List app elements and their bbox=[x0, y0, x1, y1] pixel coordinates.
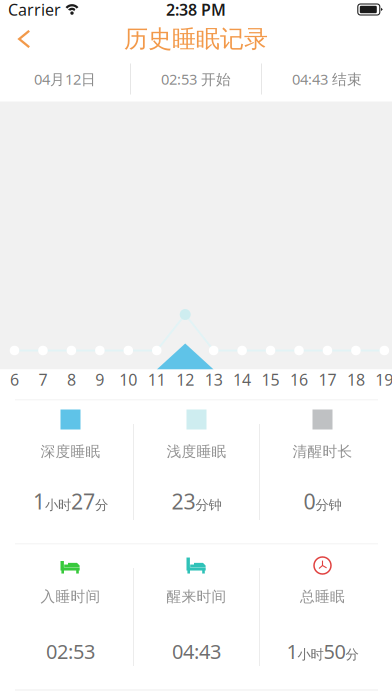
staticText: 分钟 bbox=[195, 497, 221, 513]
staticText: 0 bbox=[303, 487, 315, 515]
staticText: 总睡眠 bbox=[300, 587, 345, 605]
staticText: 19 bbox=[375, 369, 392, 390]
staticText: 50 bbox=[323, 638, 345, 664]
staticText: 27 bbox=[71, 487, 95, 515]
staticText: 11 bbox=[148, 369, 166, 390]
staticText: 1 bbox=[33, 487, 45, 515]
staticText: 醒来时间 bbox=[166, 587, 226, 605]
staticText: 14 bbox=[233, 369, 251, 390]
staticText: 小时 bbox=[297, 646, 323, 663]
staticText: 清醒时长 bbox=[292, 442, 352, 460]
staticText: Carrier bbox=[8, 0, 61, 20]
staticText: 2:38 PM bbox=[166, 0, 226, 20]
staticText: 10 bbox=[119, 369, 137, 390]
staticText: 02:53 开始 bbox=[161, 69, 231, 89]
staticText: 02:53 bbox=[46, 638, 95, 664]
staticText: 分 bbox=[345, 646, 358, 663]
staticText: 12 bbox=[176, 369, 194, 390]
staticText: 6 bbox=[10, 369, 19, 390]
staticText: 04月12日 bbox=[34, 69, 96, 89]
staticText: 23 bbox=[171, 487, 195, 515]
staticText: 15 bbox=[262, 369, 280, 390]
staticText: 1 bbox=[286, 638, 297, 664]
staticText: 17 bbox=[318, 369, 336, 390]
staticText: 9 bbox=[95, 369, 104, 390]
staticText: 04:43 结束 bbox=[292, 69, 362, 89]
staticText: 分 bbox=[95, 497, 108, 513]
staticText: 历史睡眠记录 bbox=[124, 24, 268, 54]
staticText: 浅度睡眠 bbox=[166, 442, 226, 460]
staticText: 16 bbox=[290, 369, 308, 390]
staticText: 小时 bbox=[45, 497, 71, 513]
staticText: 04:43 bbox=[172, 638, 221, 664]
staticText: 7 bbox=[38, 369, 47, 390]
staticText: 18 bbox=[347, 369, 365, 390]
staticText: 8 bbox=[67, 369, 76, 390]
staticText: 深度睡眠 bbox=[40, 442, 100, 460]
staticText: 入睡时间 bbox=[40, 587, 100, 605]
staticText: 13 bbox=[205, 369, 223, 390]
button[interactable]: Back bbox=[0, 21, 47, 56]
staticText: 分钟 bbox=[315, 497, 341, 513]
